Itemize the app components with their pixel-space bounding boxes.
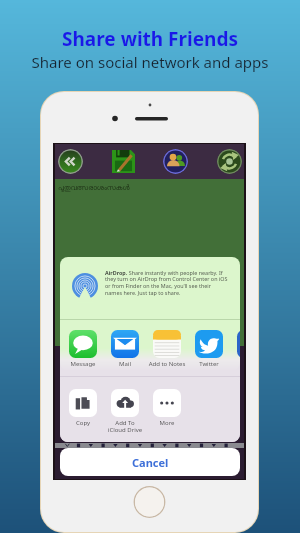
button[interactable]: Message bbox=[62, 330, 104, 368]
staticText: പുതുവത്സരാശംസകൾ bbox=[58, 184, 130, 191]
staticText: Share on social network and apps bbox=[0, 52, 300, 72]
staticText: AirDrop. Share instantly with people nea… bbox=[105, 269, 228, 297]
staticText: Cancel bbox=[132, 455, 169, 470]
button[interactable]: More bbox=[146, 389, 188, 433]
button[interactable]: Add to Notes bbox=[146, 330, 188, 368]
button[interactable]: Mail bbox=[104, 330, 146, 368]
button[interactable]: Back bbox=[58, 149, 83, 174]
button[interactable]: Twitter bbox=[188, 330, 230, 368]
button[interactable] bbox=[230, 330, 240, 368]
button[interactable]: Contacts bbox=[163, 149, 188, 174]
staticText: Add to Notes bbox=[146, 360, 188, 368]
staticText: Copy bbox=[62, 419, 104, 427]
staticText: More bbox=[146, 419, 188, 427]
button[interactable]: Save bbox=[111, 149, 136, 174]
button[interactable]: Copy bbox=[62, 389, 104, 433]
staticText: Twitter bbox=[188, 360, 230, 368]
staticText: Mail bbox=[104, 360, 146, 368]
button[interactable]: Cancel bbox=[60, 448, 240, 476]
staticText: Add To iCloud Drive bbox=[104, 419, 146, 434]
button[interactable]: Refresh bbox=[217, 149, 242, 174]
staticText: Message bbox=[62, 360, 104, 368]
button[interactable]: Add To iCloud Drive bbox=[104, 389, 146, 433]
staticText: Share with Friends bbox=[0, 26, 300, 52]
